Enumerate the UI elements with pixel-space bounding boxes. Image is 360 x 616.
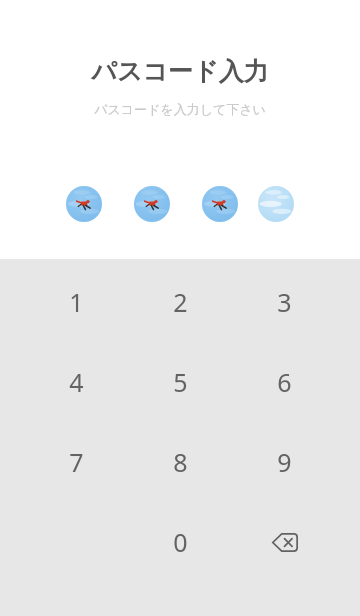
staticText: 6 [277,365,292,399]
staticText: 0 [173,525,188,559]
staticText: 9 [277,445,292,479]
button[interactable]: 8 [128,422,232,502]
staticText: 4 [69,365,84,399]
staticText: 5 [173,365,188,399]
staticText: 3 [277,285,292,319]
button[interactable]: 2 [128,262,232,342]
staticText: 8 [173,445,188,479]
button[interactable]: 3 [232,262,336,342]
staticText: パスコード入力 [91,56,269,87]
button[interactable]: 9 [232,422,336,502]
button[interactable]: 1 [24,262,128,342]
button[interactable]: 0 [128,502,232,582]
staticText: 7 [69,445,84,479]
button[interactable]: 6 [232,342,336,422]
button[interactable]: 4 [24,342,128,422]
staticText: 2 [173,285,188,319]
staticText: パスコードを入力して下さい [94,101,266,117]
button[interactable]: 5 [128,342,232,422]
staticText: 1 [69,285,84,319]
button[interactable]: 7 [24,422,128,502]
button[interactable]: Backspace [232,502,336,582]
